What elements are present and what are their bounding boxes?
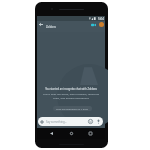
button[interactable]: Back: [47, 129, 56, 138]
button[interactable]: Emoji: [88, 119, 93, 124]
button[interactable]: Home: [67, 129, 76, 138]
button[interactable]: Profile: [97, 20, 106, 29]
button[interactable]: Video call: [89, 20, 98, 29]
staticText: 5:04: [98, 17, 104, 21]
staticText: Chat will expiration in 7 days: [56, 107, 89, 110]
button[interactable]: Chat will expiration in 7 days: [53, 106, 92, 111]
button[interactable]: Recents: [86, 129, 95, 138]
button[interactable]: Say something...: [38, 117, 103, 126]
staticText: Zoldora: [46, 25, 56, 29]
staticText: You started an incognito chat with Zoldo…: [45, 87, 97, 91]
button[interactable]: Voice message: [96, 119, 101, 124]
staticText: This is kept top secret, with incognito,…: [43, 92, 99, 100]
button[interactable]: Back: [37, 20, 45, 28]
staticText: Say something...: [46, 120, 67, 124]
